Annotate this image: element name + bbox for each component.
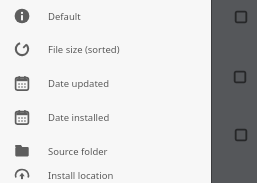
button[interactable]: Toggle option 3 — [234, 128, 248, 142]
staticText: Source folder — [48, 145, 108, 158]
button[interactable]: Source folder — [0, 134, 257, 168]
staticText: Date updated — [48, 77, 110, 90]
button[interactable]: Date updated — [0, 66, 257, 100]
button[interactable]: Default — [0, 0, 257, 32]
button[interactable]: Date installed — [0, 100, 257, 134]
staticText: Default — [48, 10, 81, 23]
button[interactable]: File size (sorted) — [0, 32, 257, 66]
button[interactable]: Toggle option 2 — [233, 70, 247, 84]
staticText: File size (sorted) — [48, 43, 120, 56]
staticText: Install location — [48, 169, 114, 182]
button[interactable]: Install location — [0, 168, 257, 183]
button[interactable]: Toggle option 1 — [234, 10, 248, 24]
staticText: Date installed — [48, 111, 110, 124]
